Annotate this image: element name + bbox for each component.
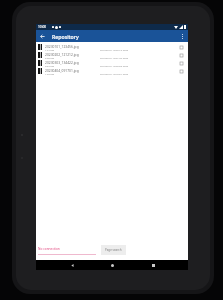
- staticText: 20230303_134422.jpg: [45, 60, 79, 64]
- staticText: 0.87 MB: [45, 64, 55, 67]
- staticText: Sat Mar 01 10:21:44 2025: [100, 56, 129, 59]
- button[interactable]: Select item: [177, 44, 185, 51]
- button[interactable]: Page search: [101, 245, 126, 255]
- button[interactable]: Recent apps: [148, 260, 158, 270]
- button[interactable]: 20230202_121212.jpg: [36, 51, 188, 59]
- staticText: Sat Mar 01 10:22:13 2025: [100, 48, 129, 51]
- button[interactable]: 20230101_123456.jpg: [36, 43, 188, 51]
- staticText: 1.21 MB: [45, 48, 55, 51]
- button[interactable]: Select item: [177, 68, 185, 75]
- staticText: 20230202_121212.jpg: [45, 52, 79, 56]
- staticText: 20230101_123456.jpg: [45, 44, 79, 48]
- staticText: No connection: [38, 247, 60, 251]
- staticText: Repository: [52, 33, 79, 40]
- button[interactable]: 20230303_134422.jpg: [36, 59, 188, 67]
- button[interactable]: Select item: [177, 60, 185, 67]
- button[interactable]: Back: [67, 260, 77, 270]
- button[interactable]: 20230404_091701.jpg: [36, 67, 188, 75]
- button[interactable]: Home: [107, 260, 117, 270]
- staticText: 2.05 MB: [45, 56, 55, 59]
- button[interactable]: More options: [177, 31, 187, 41]
- staticText: 10:00: [38, 25, 47, 29]
- staticText: Sat Mar 01 10:18:51 2025: [100, 72, 129, 75]
- staticText: Sat Mar 01 10:20:09 2025: [100, 64, 129, 67]
- button[interactable]: Select item: [177, 52, 185, 59]
- staticText: Page search: [105, 248, 122, 252]
- staticText: 20230404_091701.jpg: [45, 68, 79, 72]
- button[interactable]: Navigate up: [38, 32, 47, 41]
- button[interactable]: No connection: [38, 247, 60, 255]
- staticText: 1.55 MB: [45, 72, 55, 75]
